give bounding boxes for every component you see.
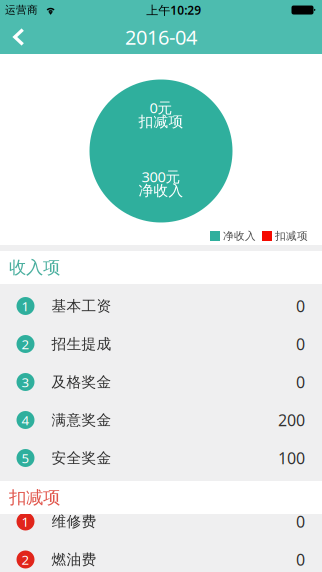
staticText: 净收入 xyxy=(223,229,256,242)
button[interactable]: Back xyxy=(0,20,46,54)
staticText: 安全奖金 xyxy=(51,449,111,467)
staticText: 2 xyxy=(21,551,29,568)
staticText: 3 xyxy=(21,373,29,391)
staticText: 维修费 xyxy=(51,512,96,530)
staticText: 净收入 xyxy=(138,181,183,199)
button[interactable]: 2 xyxy=(0,325,322,363)
button[interactable]: 3 xyxy=(0,363,322,401)
staticText: 0 xyxy=(296,295,305,317)
staticText: 0 xyxy=(296,371,305,393)
button[interactable]: 4 xyxy=(0,401,322,439)
button[interactable]: 5 xyxy=(0,439,322,477)
staticText: 100 xyxy=(278,447,305,469)
staticText: 收入项 xyxy=(9,257,60,278)
staticText: 基本工资 xyxy=(51,297,111,315)
staticText: 0 xyxy=(296,333,305,355)
staticText: 5 xyxy=(21,449,29,467)
staticText: 200 xyxy=(278,409,305,431)
staticText: 300元 xyxy=(141,167,180,186)
staticText: 扣减项 xyxy=(138,112,183,130)
staticText: 满意奖金 xyxy=(51,411,111,429)
staticText: 0元 xyxy=(149,98,172,117)
staticText: 燃油费 xyxy=(51,550,96,568)
staticText: 运营商 xyxy=(5,3,38,16)
staticText: 2 xyxy=(21,335,29,353)
staticText: 招生提成 xyxy=(51,335,111,353)
staticText: 0 xyxy=(296,549,305,570)
staticText: 上午10:29 xyxy=(146,2,201,18)
staticText: 1 xyxy=(21,297,29,315)
staticText: 4 xyxy=(21,411,29,429)
staticText: 扣减项 xyxy=(275,229,308,242)
button[interactable]: 2 xyxy=(0,540,322,572)
staticText: 0 xyxy=(296,511,305,532)
staticText: 1 xyxy=(21,513,29,530)
staticText: 扣减项 xyxy=(9,487,60,508)
staticText: 及格奖金 xyxy=(51,373,111,391)
button[interactable]: 1 xyxy=(0,502,322,540)
button[interactable]: 1 xyxy=(0,287,322,325)
staticText: 2016-04 xyxy=(125,24,197,50)
